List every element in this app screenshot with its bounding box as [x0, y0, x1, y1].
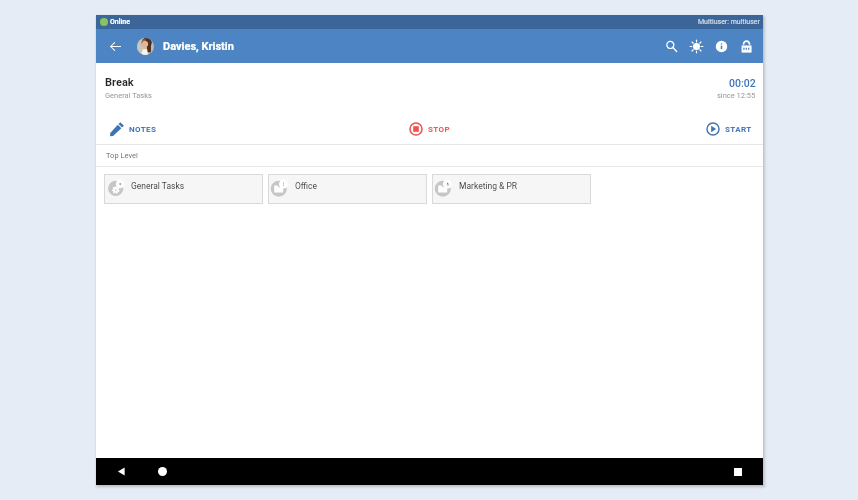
staticText: NOTES: [129, 125, 157, 134]
staticText: 00:02: [729, 77, 756, 89]
button[interactable]: Office: [268, 174, 427, 204]
button[interactable]: Back: [107, 458, 135, 485]
button[interactable]: START: [701, 118, 757, 140]
staticText: Davies, Kristin: [163, 40, 234, 53]
staticText: Multiuser: multiuser: [698, 18, 760, 26]
button[interactable]: Lock: [734, 34, 759, 59]
staticText: Marketing & PR: [459, 181, 518, 191]
staticText: General Tasks: [131, 181, 185, 191]
button[interactable]: NOTES: [105, 118, 162, 140]
staticText: Top Level: [106, 151, 138, 160]
button[interactable]: Marketing & PR: [432, 174, 591, 204]
staticText: General Tasks: [105, 91, 152, 100]
button[interactable]: Davies, Kristin: [137, 38, 234, 55]
staticText: START: [725, 125, 752, 134]
button[interactable]: Home: [148, 458, 176, 485]
staticText: Break: [105, 76, 134, 89]
button[interactable]: Search: [659, 34, 684, 59]
button[interactable]: STOP: [404, 118, 456, 140]
button[interactable]: Info: [709, 34, 734, 59]
staticText: Office: [295, 181, 318, 191]
button[interactable]: Brightness: [684, 34, 709, 59]
button[interactable]: Back: [102, 33, 129, 60]
staticText: Online: [110, 18, 130, 26]
button[interactable]: General Tasks: [104, 174, 263, 204]
staticText: since 12:55: [717, 91, 756, 100]
staticText: STOP: [428, 125, 451, 134]
button[interactable]: Recents: [724, 458, 752, 485]
